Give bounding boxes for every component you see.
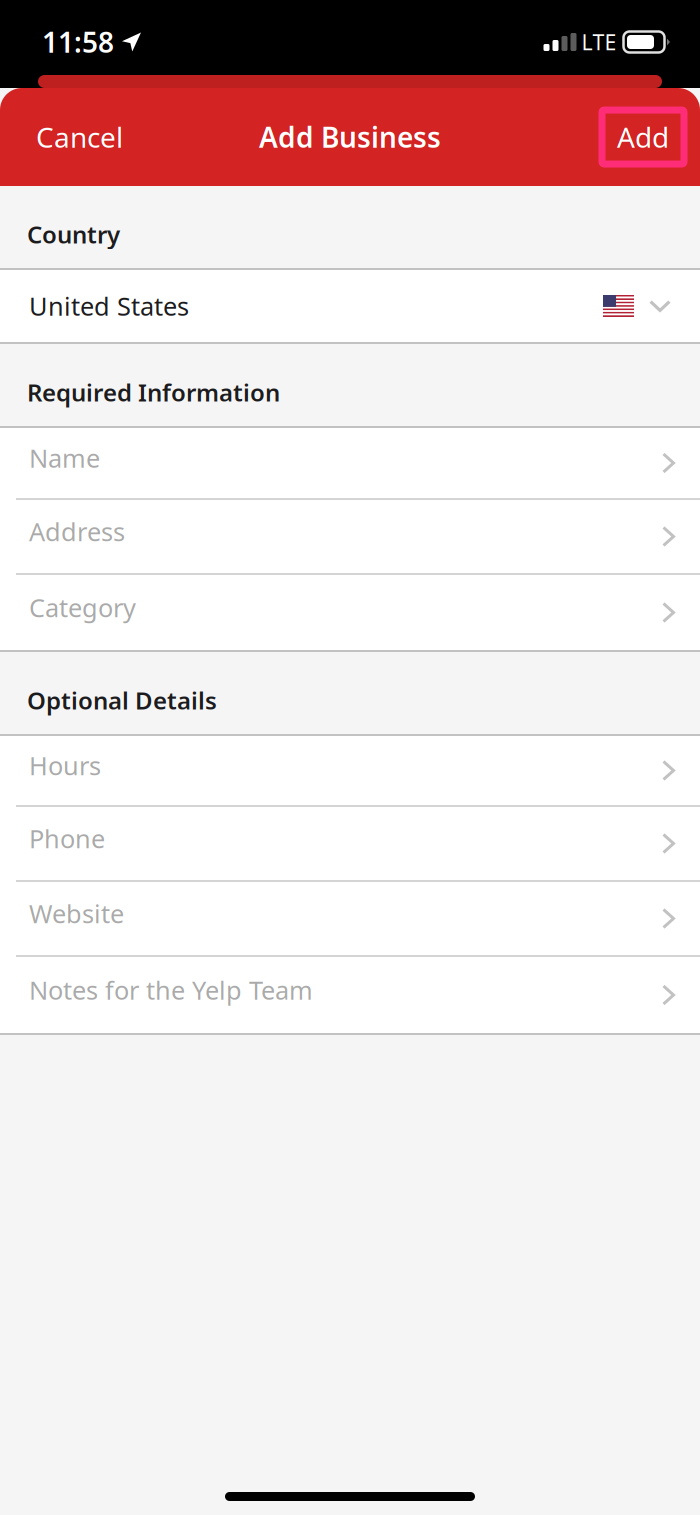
staticText: LTE [581, 28, 616, 56]
button[interactable]: Address [0, 500, 700, 575]
button[interactable]: Name [0, 428, 700, 500]
button[interactable]: Add [602, 110, 700, 164]
staticText: Name [29, 441, 100, 475]
button[interactable]: Hours [0, 736, 700, 807]
staticText: Phone [29, 822, 105, 855]
button[interactable]: Website [0, 882, 700, 957]
button[interactable]: Cancel [0, 102, 159, 172]
staticText: Notes for the Yelp Team [29, 973, 313, 1007]
button[interactable]: Notes for the Yelp Team [0, 957, 700, 1033]
button[interactable]: Category [0, 575, 700, 650]
staticText: Country [27, 218, 120, 250]
button[interactable]: Phone [0, 807, 700, 882]
staticText: Website [29, 897, 124, 930]
staticText: Add [617, 118, 669, 156]
staticText: Cancel [36, 118, 123, 156]
staticText: Required Information [27, 376, 280, 408]
button[interactable]: United States [0, 270, 700, 342]
staticText: United States [29, 289, 189, 323]
staticText: Category [29, 591, 136, 624]
staticText: 11:58 [42, 23, 114, 61]
staticText: Add Business [259, 118, 441, 156]
staticText: Optional Details [27, 684, 217, 716]
staticText: Address [29, 515, 125, 548]
staticText: Hours [29, 749, 101, 782]
